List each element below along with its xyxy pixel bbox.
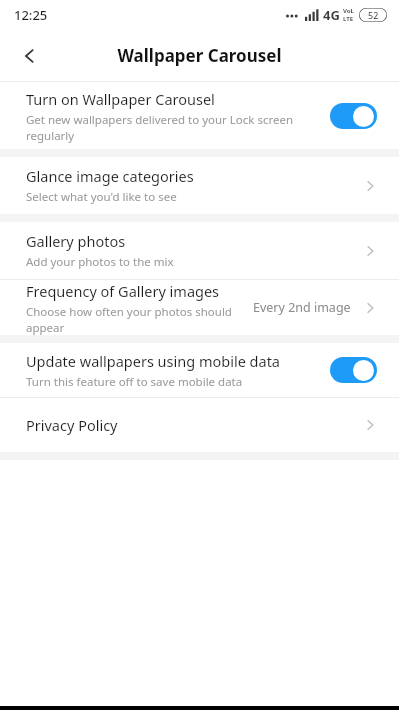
staticText: 52 xyxy=(368,9,379,21)
button[interactable]: Glance image categories xyxy=(0,157,399,214)
staticText: 4G xyxy=(323,6,340,24)
staticText: Glance image categories xyxy=(26,166,194,186)
staticText: Wallpaper Carousel xyxy=(117,44,282,67)
staticText: Every 2nd image xyxy=(253,299,351,316)
staticText: Choose how often your photos should appe… xyxy=(26,304,253,335)
staticText: Update wallpapers using mobile data xyxy=(26,351,281,371)
staticText: 12:25 xyxy=(14,6,48,24)
staticText: Privacy Policy xyxy=(26,415,118,435)
button[interactable]: Toggle xyxy=(330,357,377,383)
staticText: Select what you'd like to see xyxy=(26,189,177,205)
staticText: Get new wallpapers delivered to your Loc… xyxy=(26,112,294,143)
button[interactable]: Frequency of Gallery images xyxy=(0,280,399,335)
staticText: Turn this feature off to save mobile dat… xyxy=(26,374,243,390)
button[interactable]: Update wallpapers using mobile data xyxy=(0,343,399,397)
button[interactable]: Privacy Policy xyxy=(0,398,399,452)
staticText: Gallery photos xyxy=(26,231,126,251)
staticText: LTE xyxy=(343,15,354,23)
button[interactable]: Back xyxy=(8,34,52,78)
staticText: Turn on Wallpaper Carousel xyxy=(26,89,215,109)
button[interactable]: Turn on Wallpaper Carousel xyxy=(0,82,399,149)
staticText: Frequency of Gallery images xyxy=(26,281,220,301)
staticText: VoL xyxy=(343,7,354,15)
button[interactable]: Gallery photos xyxy=(0,222,399,279)
button[interactable]: Toggle xyxy=(330,103,377,129)
staticText: Add your photos to the mix xyxy=(26,254,174,270)
